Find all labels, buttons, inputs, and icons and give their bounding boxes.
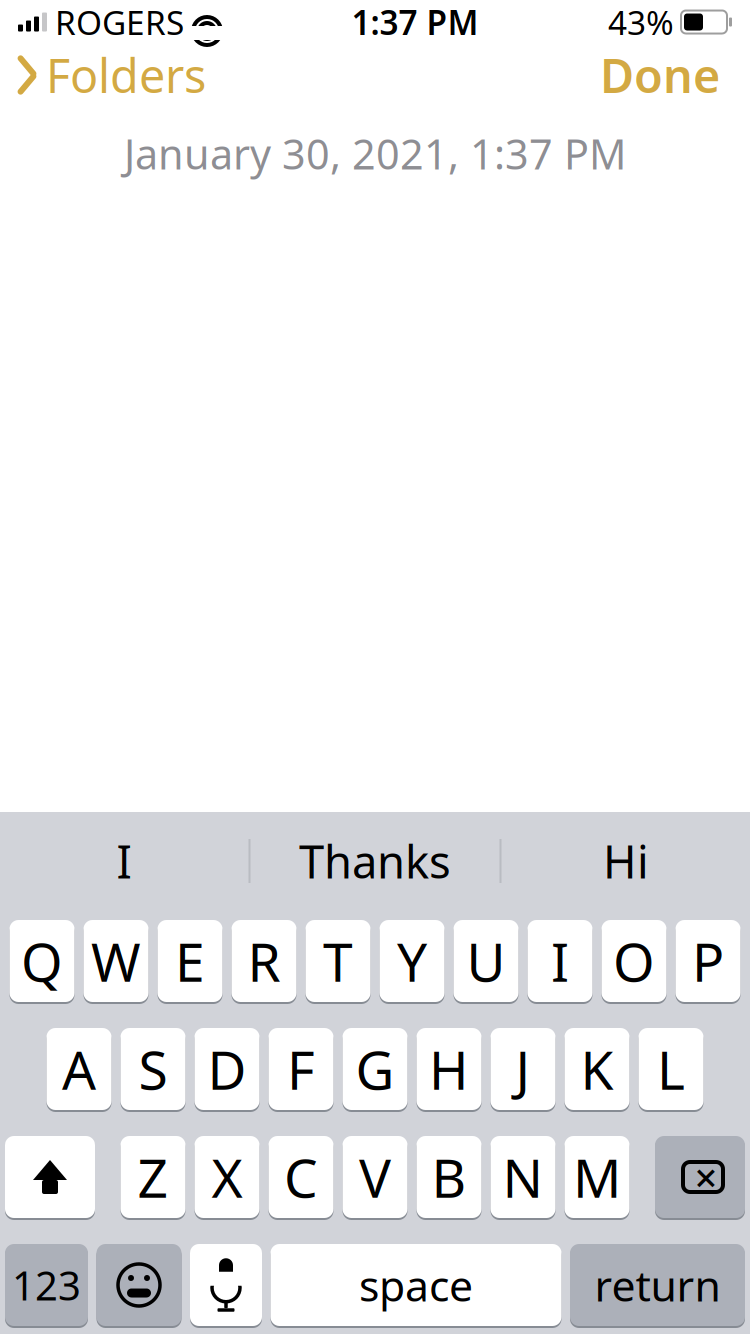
button[interactable]: M <box>564 1134 629 1220</box>
staticText: Folders <box>46 44 206 106</box>
button[interactable]: P <box>675 918 740 1004</box>
staticText: T <box>323 926 353 996</box>
button[interactable]: Delete <box>655 1134 745 1220</box>
button[interactable]: A <box>46 1026 111 1112</box>
staticText: Done <box>600 44 720 106</box>
staticText: K <box>580 1034 613 1104</box>
button[interactable]: Z <box>120 1134 185 1220</box>
staticText: I <box>116 831 131 891</box>
button[interactable]: Hi <box>501 818 750 904</box>
button[interactable]: O <box>601 918 666 1004</box>
staticText: W <box>91 926 141 996</box>
button[interactable]: Dictate <box>190 1242 262 1328</box>
button[interactable]: K <box>564 1026 629 1112</box>
staticText: V <box>359 1142 391 1212</box>
button[interactable]: C <box>268 1134 333 1220</box>
button[interactable]: Y <box>379 918 444 1004</box>
button[interactable]: J <box>490 1026 555 1112</box>
button[interactable]: Done <box>600 38 750 112</box>
staticText: Q <box>21 926 63 996</box>
button[interactable]: X <box>194 1134 259 1220</box>
staticText: R <box>247 926 280 996</box>
staticText: G <box>355 1034 394 1104</box>
button[interactable]: L <box>638 1026 703 1112</box>
staticText: P <box>692 926 724 996</box>
button[interactable]: E <box>157 918 222 1004</box>
staticText: D <box>207 1034 246 1104</box>
staticText: S <box>138 1034 167 1104</box>
staticText: January 30, 2021, 1:37 PM <box>124 126 626 181</box>
button[interactable]: Thanks <box>250 818 499 904</box>
button[interactable]: T <box>305 918 370 1004</box>
button[interactable]: Folders <box>0 38 206 112</box>
staticText: ROGERS <box>55 0 184 44</box>
staticText: Y <box>397 926 427 996</box>
staticText: 1:37 PM <box>351 0 478 44</box>
staticText: U <box>466 926 505 996</box>
button[interactable]: Shift <box>5 1134 95 1220</box>
staticText: B <box>431 1142 466 1212</box>
staticText: C <box>284 1142 318 1212</box>
staticText: 43% <box>608 0 674 44</box>
button[interactable]: R <box>231 918 296 1004</box>
button[interactable]: F <box>268 1026 333 1112</box>
button[interactable]: G <box>342 1026 407 1112</box>
staticText: × <box>694 1150 717 1203</box>
staticText: Hi <box>603 831 649 891</box>
staticText: O <box>613 926 655 996</box>
staticText: F <box>287 1034 315 1104</box>
button[interactable]: H <box>416 1026 481 1112</box>
button[interactable]: D <box>194 1026 259 1112</box>
button[interactable]: V <box>342 1134 407 1220</box>
staticText: X <box>211 1142 242 1212</box>
button[interactable]: I <box>527 918 592 1004</box>
staticText: L <box>657 1034 685 1104</box>
staticText: J <box>515 1034 530 1104</box>
staticText: Z <box>137 1142 168 1212</box>
staticText: space <box>359 1257 473 1313</box>
button[interactable]: I <box>0 818 248 904</box>
button[interactable]: U <box>453 918 518 1004</box>
button[interactable]: S <box>120 1026 185 1112</box>
button[interactable]: B <box>416 1134 481 1220</box>
staticText: E <box>175 926 205 996</box>
button[interactable]: 123 <box>5 1242 88 1328</box>
button[interactable]: N <box>490 1134 555 1220</box>
staticText: 123 <box>12 1258 81 1311</box>
button[interactable]: Q <box>9 918 74 1004</box>
staticText: Thanks <box>299 831 451 891</box>
button[interactable]: W <box>83 918 148 1004</box>
button[interactable]: space <box>270 1242 561 1328</box>
staticText: A <box>62 1034 96 1104</box>
button[interactable]: return <box>570 1242 745 1328</box>
staticText: return <box>594 1257 720 1313</box>
staticText: N <box>502 1142 543 1212</box>
staticText: I <box>551 926 569 996</box>
staticText: H <box>429 1034 469 1104</box>
button[interactable]: Emoji <box>96 1242 181 1328</box>
staticText: M <box>573 1142 621 1212</box>
